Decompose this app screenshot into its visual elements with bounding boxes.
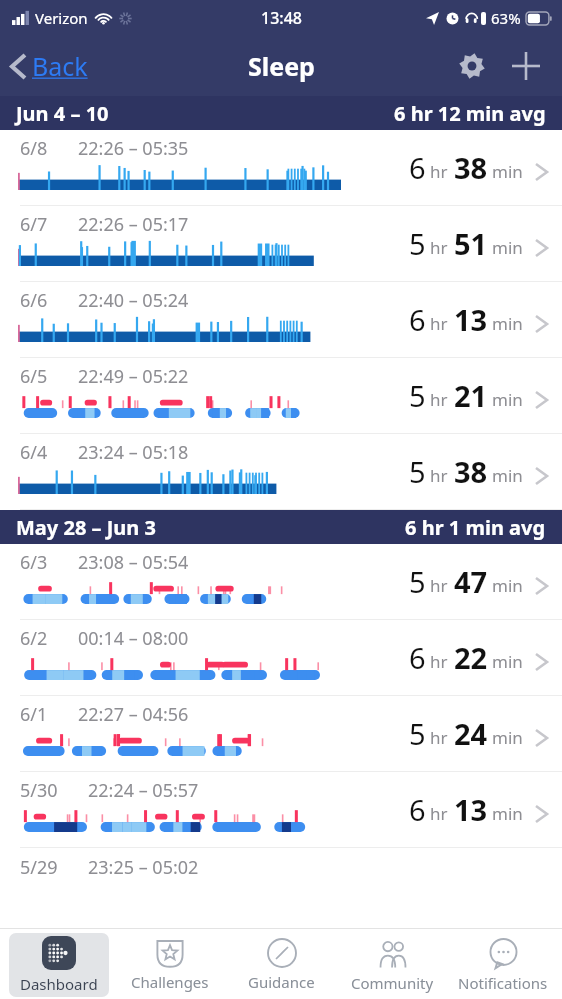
button[interactable]: 5/30: [0, 772, 562, 848]
staticText: hr: [430, 726, 448, 749]
button[interactable]: Guidance: [231, 933, 331, 997]
staticText: 6/7: [20, 212, 48, 237]
button[interactable]: 6/5: [0, 358, 562, 434]
button[interactable]: Add: [504, 44, 548, 88]
staticText: 38: [454, 452, 488, 491]
button[interactable]: 6/7: [0, 206, 562, 282]
button[interactable]: 6/4: [0, 434, 562, 510]
staticText: 6/3: [20, 550, 48, 575]
button[interactable]: 6/2: [0, 620, 562, 696]
staticText: Verizon: [35, 8, 88, 28]
staticText: 13: [454, 790, 488, 829]
staticText: min: [492, 160, 523, 183]
button[interactable]: 6/3: [0, 544, 562, 620]
button[interactable]: 6/8: [0, 130, 562, 206]
staticText: hr: [430, 236, 448, 259]
staticText: 5: [409, 452, 426, 491]
staticText: min: [492, 312, 523, 335]
staticText: 22:26 – 05:17: [78, 212, 189, 237]
staticText: 5/30: [20, 778, 58, 803]
staticText: 22:24 – 05:57: [88, 778, 199, 803]
staticText: 6/8: [20, 136, 48, 161]
staticText: Back: [32, 49, 88, 83]
staticText: 13:48: [261, 7, 302, 29]
staticText: hr: [430, 464, 448, 487]
staticText: 22: [454, 638, 488, 677]
staticText: 6/4: [20, 440, 48, 465]
staticText: 6/6: [20, 288, 48, 313]
staticText: min: [492, 802, 523, 825]
staticText: hr: [430, 574, 448, 597]
staticText: min: [492, 726, 523, 749]
staticText: 6: [409, 148, 426, 187]
button[interactable]: 6/6: [0, 282, 562, 358]
button[interactable]: Back: [0, 41, 100, 91]
staticText: Dashboard: [20, 974, 98, 994]
staticText: 21: [454, 376, 488, 415]
staticText: Sleep: [248, 49, 315, 83]
button[interactable]: Community: [342, 933, 442, 997]
staticText: min: [492, 236, 523, 259]
staticText: Guidance: [248, 972, 315, 992]
staticText: 00:14 – 08:00: [78, 626, 189, 651]
staticText: 6/5: [20, 364, 48, 389]
staticText: 6/2: [20, 626, 48, 651]
staticText: Challenges: [131, 972, 209, 992]
staticText: 6/1: [20, 702, 48, 727]
staticText: Notifications: [458, 973, 548, 993]
staticText: Jun 4 – 10: [16, 100, 109, 127]
staticText: hr: [430, 312, 448, 335]
staticText: 5/29: [20, 855, 58, 880]
staticText: 6 hr 12 min avg: [394, 100, 546, 127]
staticText: 23:08 – 05:54: [78, 550, 189, 575]
staticText: 5: [409, 224, 426, 263]
staticText: 5: [409, 714, 426, 753]
staticText: Community: [351, 973, 434, 993]
staticText: hr: [430, 388, 448, 411]
staticText: 51: [454, 224, 488, 263]
button[interactable]: 6/1: [0, 696, 562, 772]
staticText: 13: [454, 300, 488, 339]
staticText: 23:24 – 05:18: [78, 440, 189, 465]
button[interactable]: Challenges: [120, 933, 220, 997]
button[interactable]: 5/29: [0, 848, 562, 880]
button[interactable]: Dashboard: [9, 933, 109, 997]
staticText: 47: [454, 562, 488, 601]
staticText: min: [492, 464, 523, 487]
staticText: 6: [409, 790, 426, 829]
staticText: 22:40 – 05:24: [78, 288, 189, 313]
staticText: min: [492, 574, 523, 597]
staticText: 6: [409, 638, 426, 677]
staticText: 22:49 – 05:22: [78, 364, 189, 389]
staticText: min: [492, 388, 523, 411]
staticText: 5: [409, 376, 426, 415]
staticText: 6 hr 1 min avg: [405, 514, 546, 541]
staticText: 22:26 – 05:35: [78, 136, 189, 161]
staticText: min: [492, 650, 523, 673]
button[interactable]: Settings: [450, 44, 494, 88]
staticText: 23:25 – 05:02: [88, 855, 199, 880]
staticText: hr: [430, 160, 448, 183]
staticText: 38: [454, 148, 488, 187]
staticText: May 28 – Jun 3: [16, 514, 156, 541]
staticText: hr: [430, 650, 448, 673]
staticText: 5: [409, 562, 426, 601]
button[interactable]: Notifications: [453, 933, 553, 997]
staticText: 6: [409, 300, 426, 339]
staticText: 63%: [491, 8, 521, 28]
staticText: hr: [430, 802, 448, 825]
staticText: 22:27 – 04:56: [78, 702, 189, 727]
staticText: 24: [454, 714, 488, 753]
